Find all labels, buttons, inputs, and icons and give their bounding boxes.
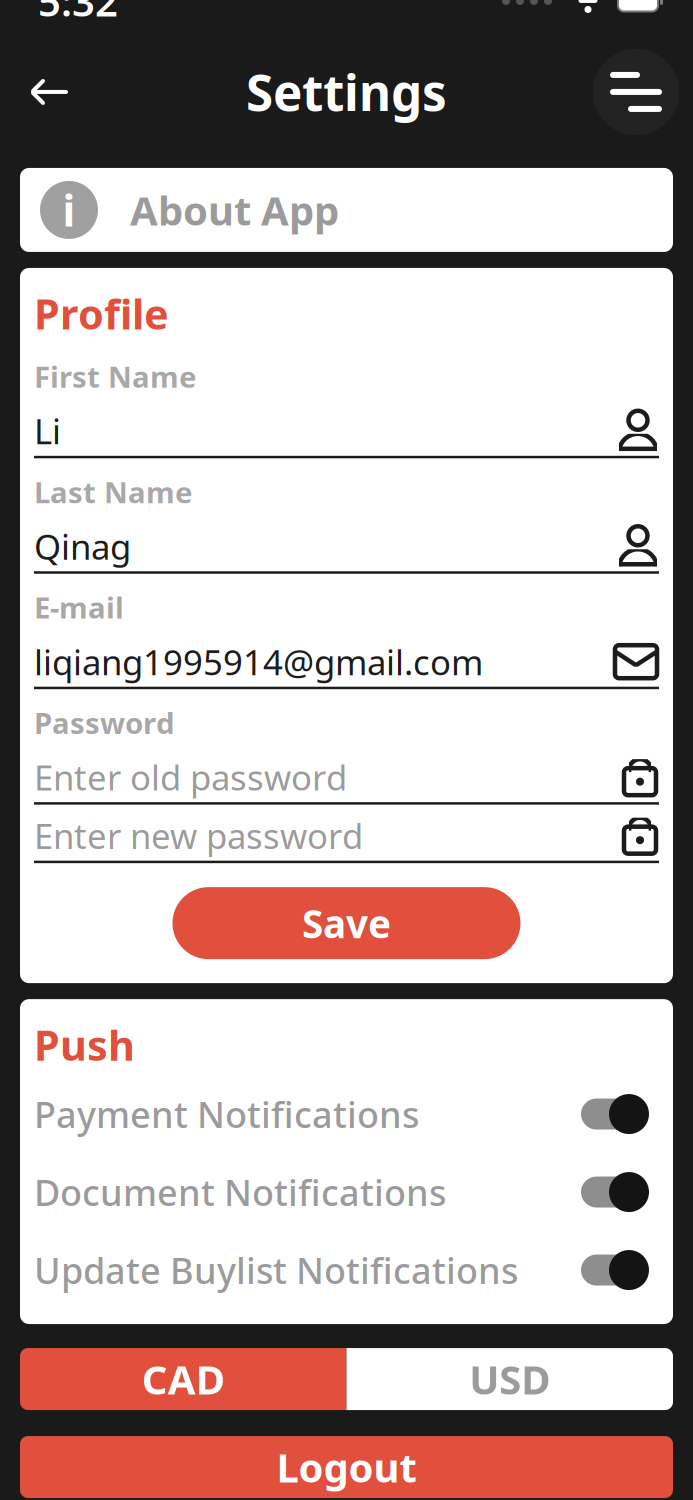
staticText: Password [34, 703, 175, 742]
staticText: liqiang1995914@gmail.com [34, 639, 483, 685]
staticText: Li [34, 408, 61, 454]
staticText: CAD [142, 1352, 225, 1406]
button[interactable]: Payment Notifications [34, 1086, 659, 1142]
button[interactable]: Logout [20, 1436, 673, 1498]
staticText: USD [469, 1352, 550, 1406]
staticText: Document Notifications [34, 1168, 446, 1216]
button[interactable]: Back [26, 68, 74, 116]
staticText: Push [34, 1017, 135, 1072]
staticText: Settings [246, 59, 447, 125]
staticText: Last Name [34, 472, 193, 511]
staticText: Qinag [34, 523, 131, 569]
button[interactable]: Update Buylist Notifications [34, 1242, 659, 1298]
staticText: Enter old password [34, 754, 347, 800]
staticText: E-mail [34, 588, 124, 627]
staticText: First Name [34, 357, 197, 396]
staticText: Payment Notifications [34, 1090, 419, 1138]
staticText: Profile [34, 286, 169, 341]
staticText: Enter new password [34, 813, 363, 859]
button[interactable]: i [20, 168, 673, 252]
button[interactable]: Document Notifications [34, 1164, 659, 1220]
staticText: About App [130, 183, 339, 236]
staticText: Logout [276, 1440, 416, 1494]
staticText: Update Buylist Notifications [34, 1246, 518, 1294]
button[interactable]: Save [172, 887, 520, 959]
staticText: 5:32 [38, 0, 118, 27]
button[interactable]: USD [346, 1348, 673, 1410]
staticText: i [62, 182, 75, 238]
button[interactable]: CAD [20, 1348, 346, 1410]
staticText: Save [302, 897, 391, 949]
button[interactable]: Menu [593, 49, 679, 135]
